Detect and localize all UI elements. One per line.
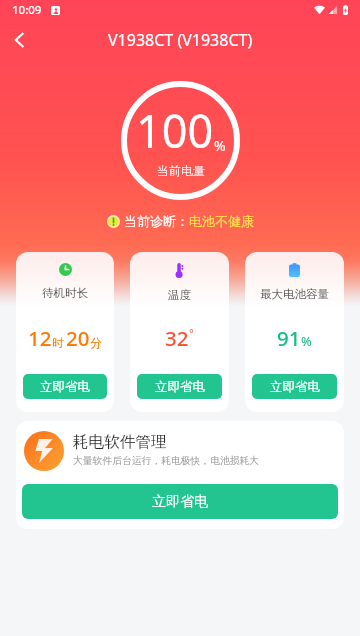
button[interactable]: 耗电软件管理 [16, 421, 344, 529]
staticText: 电池不健康 [189, 213, 254, 229]
staticText: 立即省电 [155, 379, 205, 395]
staticText: 立即省电 [270, 379, 320, 395]
staticText: % [214, 136, 226, 155]
staticText: 大量软件后台运行，耗电极快，电池损耗大 [73, 455, 260, 467]
button[interactable]: Back [0, 21, 38, 59]
button[interactable]: 立即省电 [137, 374, 222, 399]
staticText: % [301, 332, 312, 350]
button[interactable]: 最大电池容量 [245, 252, 344, 412]
staticText: V1938CT (V1938CT) [108, 29, 253, 51]
staticText: 12 [28, 324, 52, 352]
staticText: 温度 [168, 288, 191, 302]
staticText: 立即省电 [152, 493, 208, 511]
staticText: 100 [136, 100, 214, 161]
staticText: 当前电量 [157, 163, 205, 178]
staticText: 91 [277, 324, 301, 352]
staticText: 时 [52, 336, 64, 350]
button[interactable]: 立即省电 [22, 484, 338, 519]
staticText: 耗电软件管理 [73, 432, 167, 452]
staticText: 分 [90, 335, 102, 350]
staticText: 20 [66, 324, 90, 352]
staticText: 10:09 [12, 2, 42, 18]
staticText: 待机时长 [42, 286, 88, 300]
button[interactable]: 待机时长 [16, 252, 114, 412]
staticText: 当前诊断： [124, 213, 189, 229]
button[interactable]: 温度 [130, 252, 229, 412]
button[interactable]: 立即省电 [252, 374, 337, 399]
staticText: 立即省电 [40, 379, 90, 395]
staticText: 最大电池容量 [260, 287, 329, 301]
staticText: 32 [165, 324, 189, 352]
button[interactable]: 立即省电 [23, 374, 107, 399]
staticText: ° [189, 325, 194, 340]
